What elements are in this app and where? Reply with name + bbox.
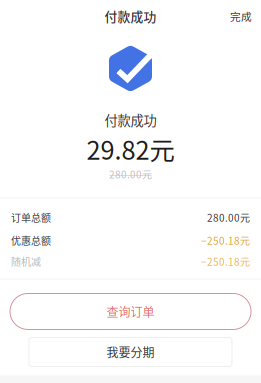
button[interactable]: 完成 [221,1,261,31]
staticText: −250.18元 [201,233,250,248]
staticText: 280.00元 [109,167,152,181]
staticText: 280.00元 [207,210,250,225]
staticText: 随机减 [11,254,41,269]
staticText: 29.82元 [86,130,174,167]
staticText: 订单总额 [11,210,51,225]
staticText: −250.18元 [201,254,250,269]
staticText: 优惠总额 [11,233,51,248]
button[interactable]: 查询订单 [10,293,251,329]
staticText: 完成 [230,8,252,24]
staticText: 查询订单 [106,303,154,320]
staticText: 付款成功 [104,110,156,129]
button[interactable]: 我要分期 [29,337,232,366]
staticText: 付款成功 [104,7,156,25]
staticText: 我要分期 [106,343,154,361]
